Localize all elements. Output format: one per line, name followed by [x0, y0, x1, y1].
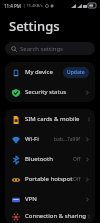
staticText: Connection & sharing	[25, 212, 87, 220]
other: SIM cards	[12, 116, 20, 124]
staticText: SIM cards & mobile networks	[25, 115, 89, 123]
other: Wi-Fi	[12, 136, 20, 144]
other: Security status	[12, 89, 20, 97]
button[interactable]: Connection and sharing	[5, 209, 95, 223]
button[interactable]: VPN	[5, 189, 95, 209]
other: My device	[12, 69, 20, 77]
staticText: Security status	[25, 88, 67, 96]
staticText: bab…7a99f	[54, 136, 81, 143]
other: Connection and sharing	[12, 213, 20, 221]
button[interactable]: Update	[63, 67, 89, 78]
button[interactable]: Bluetooth	[5, 149, 95, 169]
staticText: Search settings	[20, 45, 63, 53]
button[interactable]: Wi-Fi	[5, 129, 95, 149]
button[interactable]: Search settings	[5, 42, 95, 55]
staticText: Off	[73, 156, 81, 163]
staticText: Settings	[9, 17, 60, 35]
staticText: Portable hotspot	[25, 175, 73, 183]
other: Bluetooth	[12, 156, 20, 164]
staticText: Bluetooth	[25, 155, 53, 163]
staticText: 11:4 PM	[4, 3, 21, 9]
other: VPN	[12, 196, 20, 204]
staticText: Off	[73, 176, 81, 183]
button[interactable]: Security status	[5, 82, 95, 102]
button[interactable]: Portable hotspot	[5, 169, 95, 189]
other: Portable hotspot	[12, 176, 20, 184]
staticText: | 15.4KB/s	[23, 3, 43, 8]
staticText: Wi-Fi	[25, 135, 39, 143]
button[interactable]: My device	[5, 62, 95, 82]
staticText: My device	[25, 68, 53, 76]
staticText: VPN	[25, 195, 37, 203]
staticText: Update	[67, 69, 85, 76]
button[interactable]: SIM cards	[5, 109, 95, 129]
